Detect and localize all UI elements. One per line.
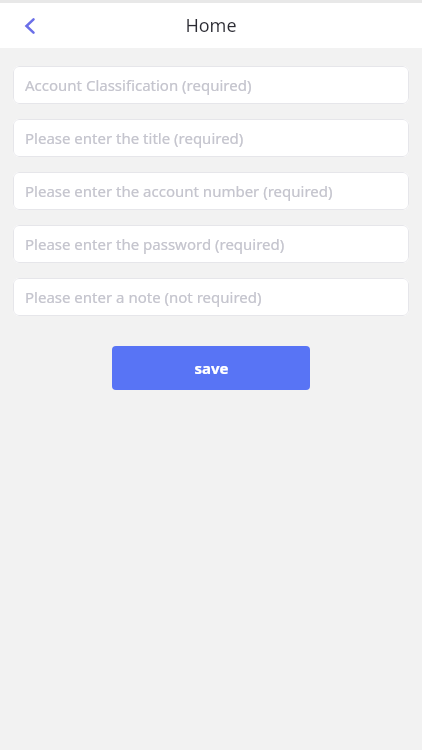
- button[interactable]: Please enter the account number (require…: [13, 172, 409, 210]
- button[interactable]: Account Classification (required): [13, 66, 409, 104]
- staticText: Home: [185, 13, 237, 38]
- button[interactable]: Please enter the password (required): [13, 225, 409, 263]
- staticText: Please enter the title (required): [25, 128, 244, 148]
- button[interactable]: Please enter a note (not required): [13, 278, 409, 316]
- staticText: Please enter the account number (require…: [25, 181, 333, 201]
- staticText: Account Classification (required): [25, 75, 252, 95]
- button[interactable]: Please enter the title (required): [13, 119, 409, 157]
- staticText: Please enter the password (required): [25, 234, 285, 254]
- staticText: save: [194, 358, 229, 378]
- staticText: Please enter a note (not required): [25, 287, 262, 307]
- button[interactable]: Back: [10, 6, 50, 46]
- button[interactable]: save: [112, 346, 310, 390]
